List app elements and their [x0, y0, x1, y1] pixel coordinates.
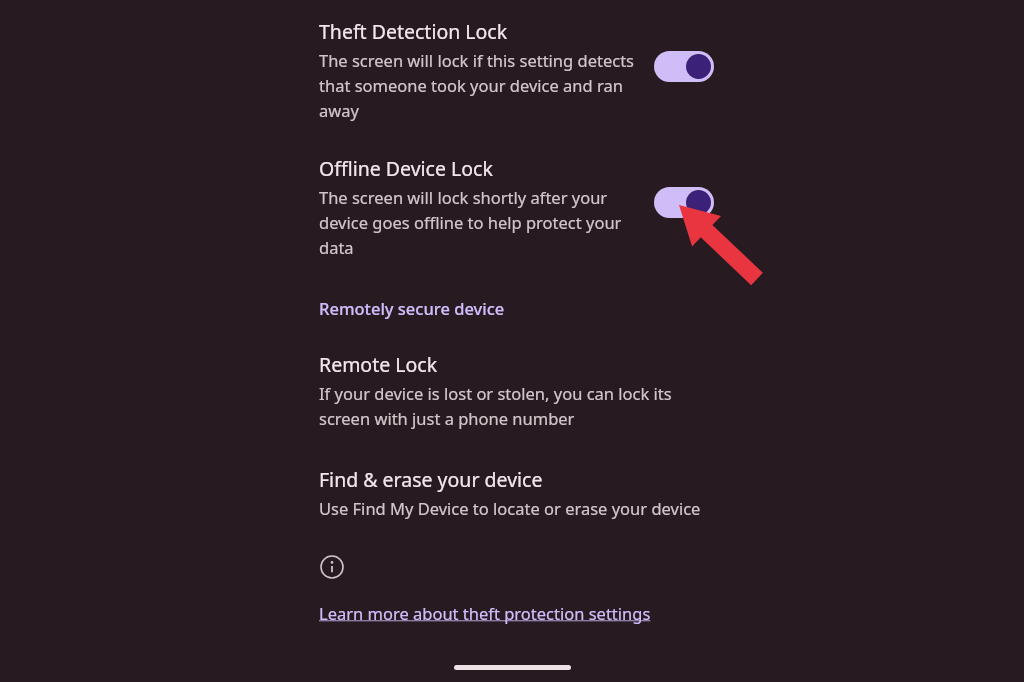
button[interactable]: Remote Lock [300, 345, 730, 440]
staticText: Learn more about theft protection settin… [319, 602, 651, 624]
staticText: Remotely secure device [319, 297, 505, 319]
button[interactable]: Remotely secure device [319, 297, 505, 319]
button[interactable]: Information [320, 555, 344, 579]
button[interactable]: Learn more about theft protection settin… [319, 602, 651, 624]
staticText: The screen will lock if this setting det… [319, 49, 639, 121]
button[interactable]: Offline Device Lock [300, 140, 730, 270]
button[interactable]: Find & erase your device [300, 460, 740, 530]
button[interactable]: Theft Detection Lock [300, 0, 730, 130]
staticText: Offline Device Lock [319, 155, 493, 182]
staticText: The screen will lock shortly after your … [319, 186, 639, 258]
button[interactable]: Offline Device Lock toggle, on [654, 187, 714, 218]
staticText: Find & erase your device [319, 466, 543, 493]
staticText: If your device is lost or stolen, you ca… [319, 382, 699, 429]
button[interactable]: Theft Detection Lock toggle, on [654, 51, 714, 82]
staticText: Use Find My Device to locate or erase yo… [319, 497, 701, 519]
staticText: Theft Detection Lock [319, 18, 508, 45]
staticText: Remote Lock [319, 351, 438, 378]
